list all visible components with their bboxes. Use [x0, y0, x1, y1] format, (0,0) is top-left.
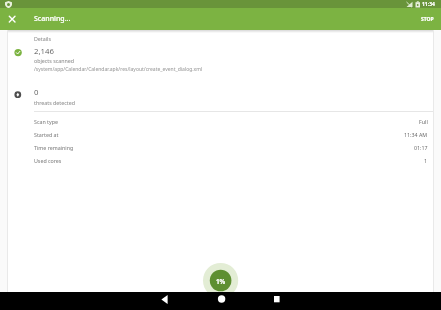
- staticText: threats detected: [34, 99, 75, 106]
- staticText: Scanning...: [34, 14, 71, 24]
- staticText: 11:34 AM: [404, 131, 428, 138]
- button[interactable]: [7, 154, 433, 167]
- button[interactable]: [155, 292, 173, 310]
- staticText: Used cores: [34, 157, 62, 164]
- button[interactable]: [7, 114, 433, 127]
- button[interactable]: STOP: [421, 8, 441, 30]
- staticText: Details: [34, 35, 52, 42]
- staticText: Started at: [34, 131, 59, 138]
- staticText: /system/app/Calendar/Calendar.apk/res/la…: [34, 66, 203, 73]
- button[interactable]: [5, 12, 19, 26]
- staticText: 0: [34, 87, 39, 98]
- staticText: 11:34: [422, 1, 435, 8]
- staticText: Time remaining: [34, 144, 74, 151]
- button[interactable]: [268, 292, 286, 310]
- staticText: objects scanned: [34, 57, 75, 64]
- staticText: 01:17: [414, 144, 428, 151]
- staticText: 2,146: [34, 46, 54, 57]
- staticText: STOP: [421, 16, 434, 23]
- staticText: 1%: [216, 277, 226, 286]
- staticText: Scan type: [34, 118, 58, 125]
- button[interactable]: [212, 292, 230, 310]
- staticText: Full: [419, 118, 428, 125]
- button[interactable]: [7, 141, 433, 154]
- staticText: 1: [424, 157, 428, 164]
- button[interactable]: [7, 127, 433, 140]
